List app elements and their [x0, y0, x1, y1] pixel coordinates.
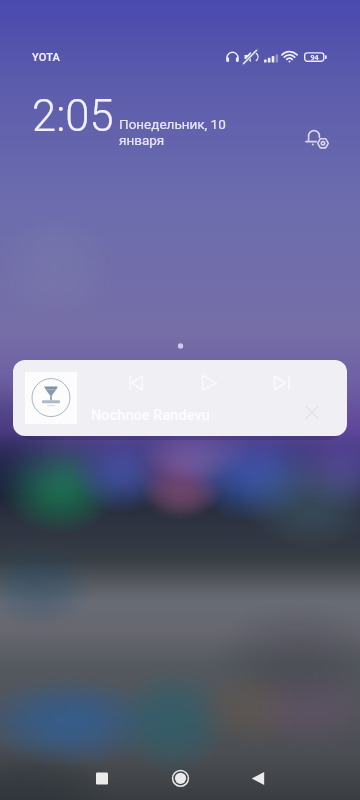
- staticText: Понедельник, 10 января: [119, 116, 226, 148]
- staticText: YOTA: [32, 51, 61, 64]
- staticText: 94: [307, 53, 322, 62]
- button[interactable]: Dismiss: [300, 400, 324, 424]
- button[interactable]: Recents: [90, 766, 114, 790]
- button[interactable]: Notification settings: [302, 124, 332, 154]
- button[interactable]: Back: [246, 766, 270, 790]
- staticText: Nochnoe Randevu: [91, 406, 210, 423]
- button[interactable]: Home: [168, 766, 192, 790]
- button[interactable]: Previous: [13, 360, 347, 436]
- staticText: 2:05: [32, 91, 114, 142]
